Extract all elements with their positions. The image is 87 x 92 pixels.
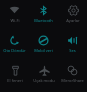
staticText: Bluetooth: [34, 18, 53, 23]
staticText: Mobil veri: [34, 48, 53, 53]
staticText: Wi-Fi: [10, 18, 20, 23]
button[interactable]: Wi-Fi: [0, 0, 29, 30]
staticText: Ayarlar: [66, 18, 80, 23]
button[interactable]: Ayarlar: [58, 0, 87, 30]
staticText: El feneri: [7, 78, 23, 83]
staticText: MirrorShare: [61, 78, 84, 83]
staticText: Uçak modu: [33, 78, 55, 83]
button[interactable]: El feneri: [0, 60, 29, 90]
button[interactable]: Uçak modu: [29, 60, 58, 90]
button[interactable]: Oto Döndür: [0, 30, 29, 60]
button[interactable]: Bluetooth: [29, 0, 58, 30]
button[interactable]: Ses: [58, 30, 87, 60]
staticText: Ses: [69, 48, 76, 53]
button[interactable]: MirrorShare: [58, 60, 87, 90]
staticText: Oto Döndür: [3, 48, 26, 53]
button[interactable]: Mobil veri: [29, 30, 58, 60]
